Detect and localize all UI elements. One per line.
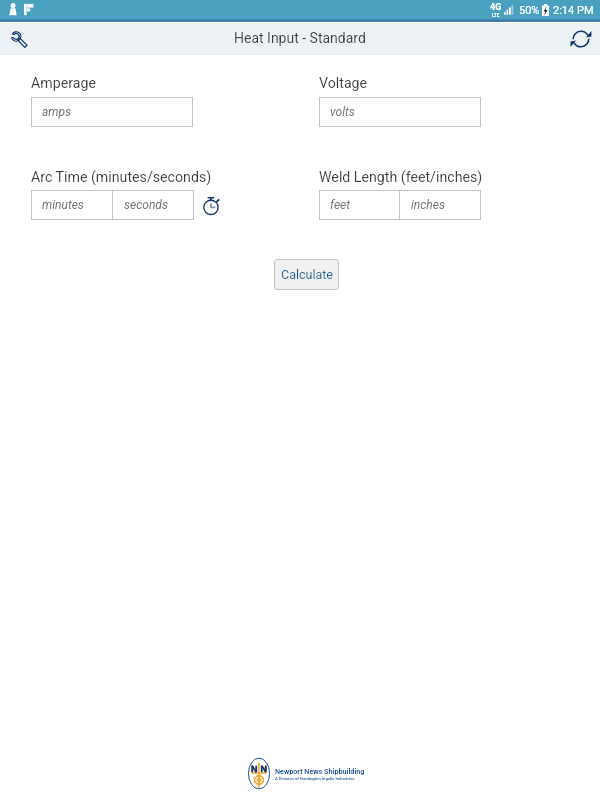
staticText: volts [330, 105, 355, 119]
button[interactable]: seconds [113, 190, 194, 220]
staticText: Weld Length (feet/inches) [319, 169, 483, 186]
staticText: 4G [490, 2, 502, 13]
staticText: LTE [492, 13, 500, 18]
staticText: minutes [42, 198, 84, 212]
button[interactable]: Start timer [198, 192, 224, 218]
staticText: Calculate [281, 267, 333, 282]
staticText: seconds [124, 198, 168, 212]
button[interactable]: Calculate [274, 259, 339, 290]
staticText: A Division of Huntington Ingalls Industr… [275, 776, 355, 781]
staticText: 50% [519, 4, 540, 17]
staticText: Amperage [31, 75, 96, 92]
button[interactable]: Reset [566, 24, 596, 54]
staticText: Newport News Shipbuilding [275, 767, 365, 775]
button[interactable]: Settings [4, 24, 34, 54]
staticText: feet [330, 198, 351, 212]
button[interactable]: minutes [31, 190, 112, 220]
staticText: Voltage [319, 75, 368, 92]
button[interactable]: volts [319, 97, 481, 127]
staticText: Heat Input - Standard [234, 30, 366, 46]
button[interactable]: inches [400, 190, 481, 220]
staticText: 2:14 PM [553, 4, 594, 17]
staticText: inches [411, 198, 445, 212]
button[interactable]: feet [319, 190, 399, 220]
staticText: Arc Time (minutes/seconds) [31, 169, 212, 186]
button[interactable]: amps [31, 97, 193, 127]
staticText: amps [42, 105, 72, 119]
